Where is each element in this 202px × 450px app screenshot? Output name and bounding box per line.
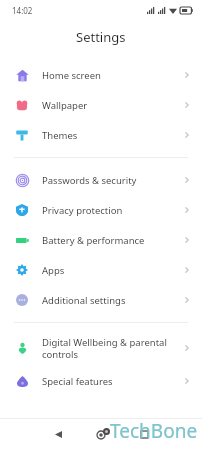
button[interactable]: Digital Wellbeing & parental controls bbox=[0, 330, 202, 366]
staticText: Privacy protection bbox=[42, 204, 182, 217]
button[interactable]: Privacy protection bbox=[0, 195, 202, 225]
staticText: Themes bbox=[42, 129, 182, 142]
staticText: Apps bbox=[42, 264, 182, 277]
button[interactable]: Apps bbox=[0, 255, 202, 285]
button[interactable]: Wallpaper bbox=[0, 90, 202, 120]
button[interactable]: Battery & performance bbox=[0, 225, 202, 255]
button[interactable]: Themes bbox=[0, 120, 202, 150]
button[interactable]: Home bbox=[85, 419, 117, 450]
button[interactable]: Passwords & security bbox=[0, 165, 202, 195]
staticText: Home screen bbox=[42, 69, 182, 82]
staticText: Special features bbox=[42, 375, 182, 388]
staticText: Additional settings bbox=[42, 294, 182, 307]
staticText: Passwords & security bbox=[42, 174, 182, 187]
staticText: Settings bbox=[76, 28, 126, 46]
button[interactable]: Special features bbox=[0, 366, 202, 396]
staticText: Digital Wellbeing & parental controls bbox=[42, 336, 182, 361]
staticText: Wallpaper bbox=[42, 99, 182, 112]
button[interactable]: Additional settings bbox=[0, 285, 202, 315]
button[interactable]: Back bbox=[42, 419, 74, 450]
button[interactable]: Recents bbox=[128, 419, 160, 450]
staticText: 14:02 bbox=[12, 5, 33, 16]
staticText: Battery & performance bbox=[42, 234, 182, 247]
staticText: TechBone bbox=[110, 418, 198, 444]
button[interactable]: Home screen bbox=[0, 60, 202, 90]
